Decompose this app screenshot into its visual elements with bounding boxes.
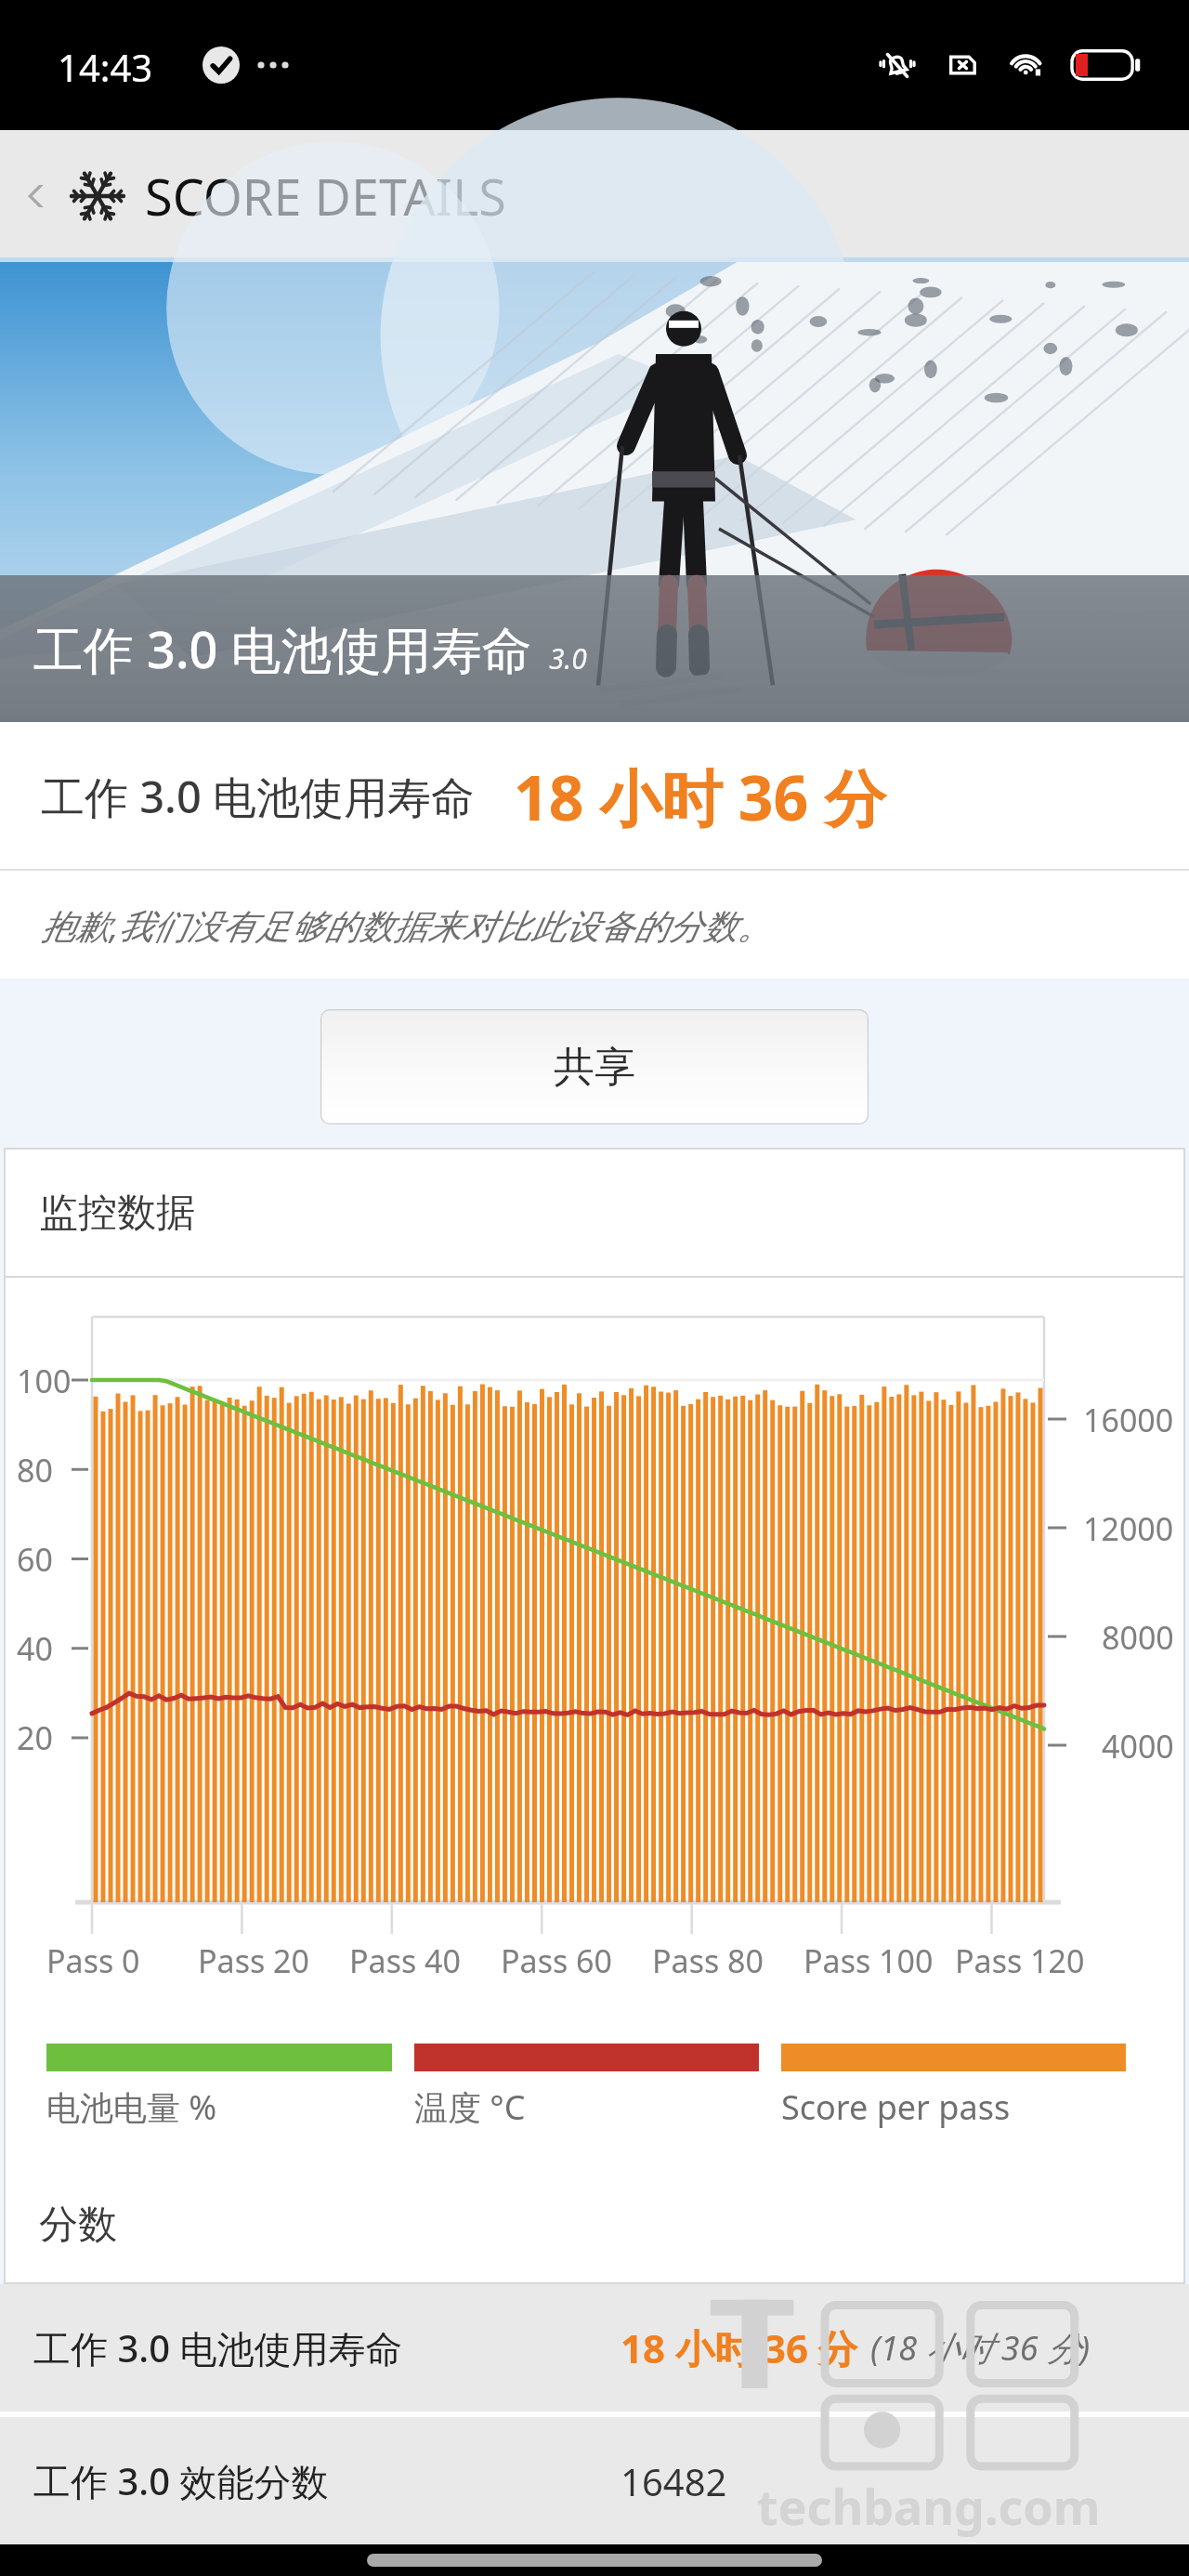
staticText: 工作 3.0 电池使用寿命 xyxy=(41,767,475,826)
staticText: Pass 120 xyxy=(955,1939,1085,1982)
staticText: 18 小时 36 分 xyxy=(514,755,886,838)
button[interactable]: 工作 3.0 效能分数 xyxy=(0,2417,1189,2544)
staticText: 工作 3.0 效能分数 xyxy=(33,2455,329,2506)
staticText: 工作 3.0 电池使用寿命 xyxy=(33,614,532,683)
staticText: Pass 80 xyxy=(652,1939,764,1982)
staticText: 80 xyxy=(17,1449,53,1492)
staticText: 20 xyxy=(17,1716,53,1759)
staticText: Pass 100 xyxy=(804,1939,934,1982)
staticText: 8000 xyxy=(1102,1616,1174,1659)
staticText: 14:43 xyxy=(58,42,153,92)
staticText: 16482 xyxy=(621,2456,727,2506)
staticText: Score per pass xyxy=(781,2084,1011,2130)
staticText: 4000 xyxy=(1102,1725,1174,1768)
staticText: 监控数据 xyxy=(39,1189,195,1238)
staticText: techbang.com xyxy=(757,2473,1101,2539)
staticText: Pass 20 xyxy=(198,1939,309,1982)
button[interactable]: 工作 3.0 电池使用寿命 xyxy=(0,2284,1189,2412)
staticText: Pass 40 xyxy=(349,1939,461,1982)
staticText: 12000 xyxy=(1083,1507,1174,1550)
staticText: 3.0 xyxy=(549,639,587,677)
staticText: SCORE DETAILS xyxy=(145,162,506,230)
staticText: 16000 xyxy=(1083,1399,1174,1441)
staticText: 40 xyxy=(17,1627,53,1670)
button[interactable]: Home xyxy=(367,2554,822,2567)
staticText: 60 xyxy=(17,1538,53,1581)
staticText: (18 小时 36 分) xyxy=(870,2325,1091,2371)
staticText: 共享 xyxy=(554,1042,635,1093)
staticText: 分数 xyxy=(39,2201,117,2250)
staticText: 抱歉,我们没有足够的数据来对比此设备的分数。 xyxy=(41,901,772,949)
staticText: 温度 °C xyxy=(414,2084,526,2130)
button[interactable]: 工作 3.0 电池使用寿命 xyxy=(0,722,1189,871)
staticText: 18 小时 36 分 xyxy=(621,2321,857,2374)
button[interactable]: Back xyxy=(13,170,65,222)
button[interactable]: 共享 xyxy=(320,1009,869,1124)
staticText: 100 xyxy=(17,1360,72,1402)
staticText: 电池电量 % xyxy=(46,2084,217,2130)
staticText: Pass 0 xyxy=(46,1939,140,1982)
staticText: Pass 60 xyxy=(501,1939,612,1982)
staticText: 工作 3.0 电池使用寿命 xyxy=(33,2322,403,2373)
